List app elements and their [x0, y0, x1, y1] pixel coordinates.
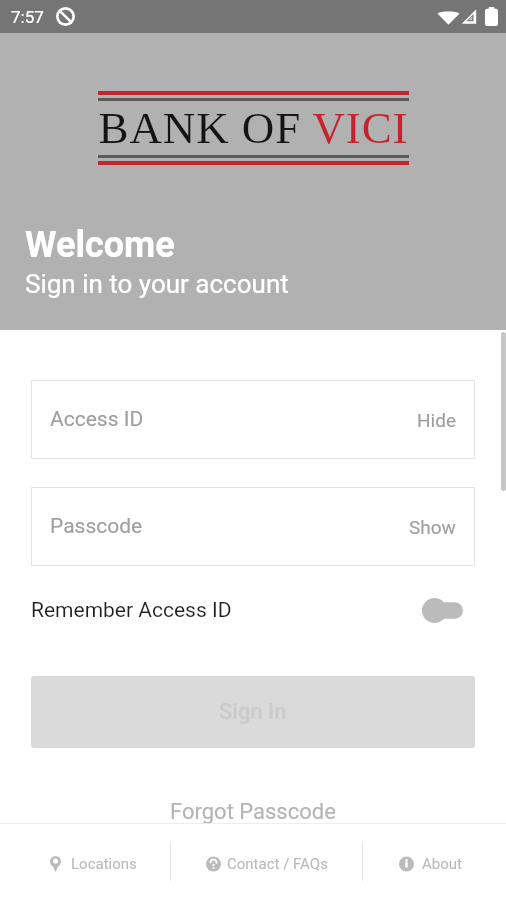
staticText: Locations [71, 855, 137, 873]
button[interactable]: Passcode [31, 487, 475, 566]
button[interactable]: Locations [24, 826, 163, 900]
button[interactable]: Forgot Passcode [31, 792, 475, 832]
staticText: Forgot Passcode [170, 799, 336, 825]
staticText: Hide [417, 409, 456, 431]
staticText: About [422, 855, 462, 873]
button[interactable]: About [373, 826, 488, 900]
staticText: 7:57 [11, 7, 44, 27]
staticText: Access ID [50, 407, 144, 432]
other: Do not disturb [56, 7, 75, 26]
staticText: Contact / FAQs [227, 855, 328, 873]
staticText: Passcode [50, 514, 143, 539]
staticText: BANK OF VICI [98, 103, 409, 153]
button[interactable]: Remember Access ID [31, 592, 475, 628]
button[interactable]: Access ID [31, 380, 475, 459]
staticText: Show [409, 516, 456, 538]
staticText: Welcome [25, 224, 175, 266]
staticText: Sign in to your account [25, 269, 289, 299]
staticText: Remember Access ID [31, 598, 232, 623]
button[interactable]: Contact / FAQs [180, 826, 354, 900]
staticText: Sign In [219, 699, 287, 725]
